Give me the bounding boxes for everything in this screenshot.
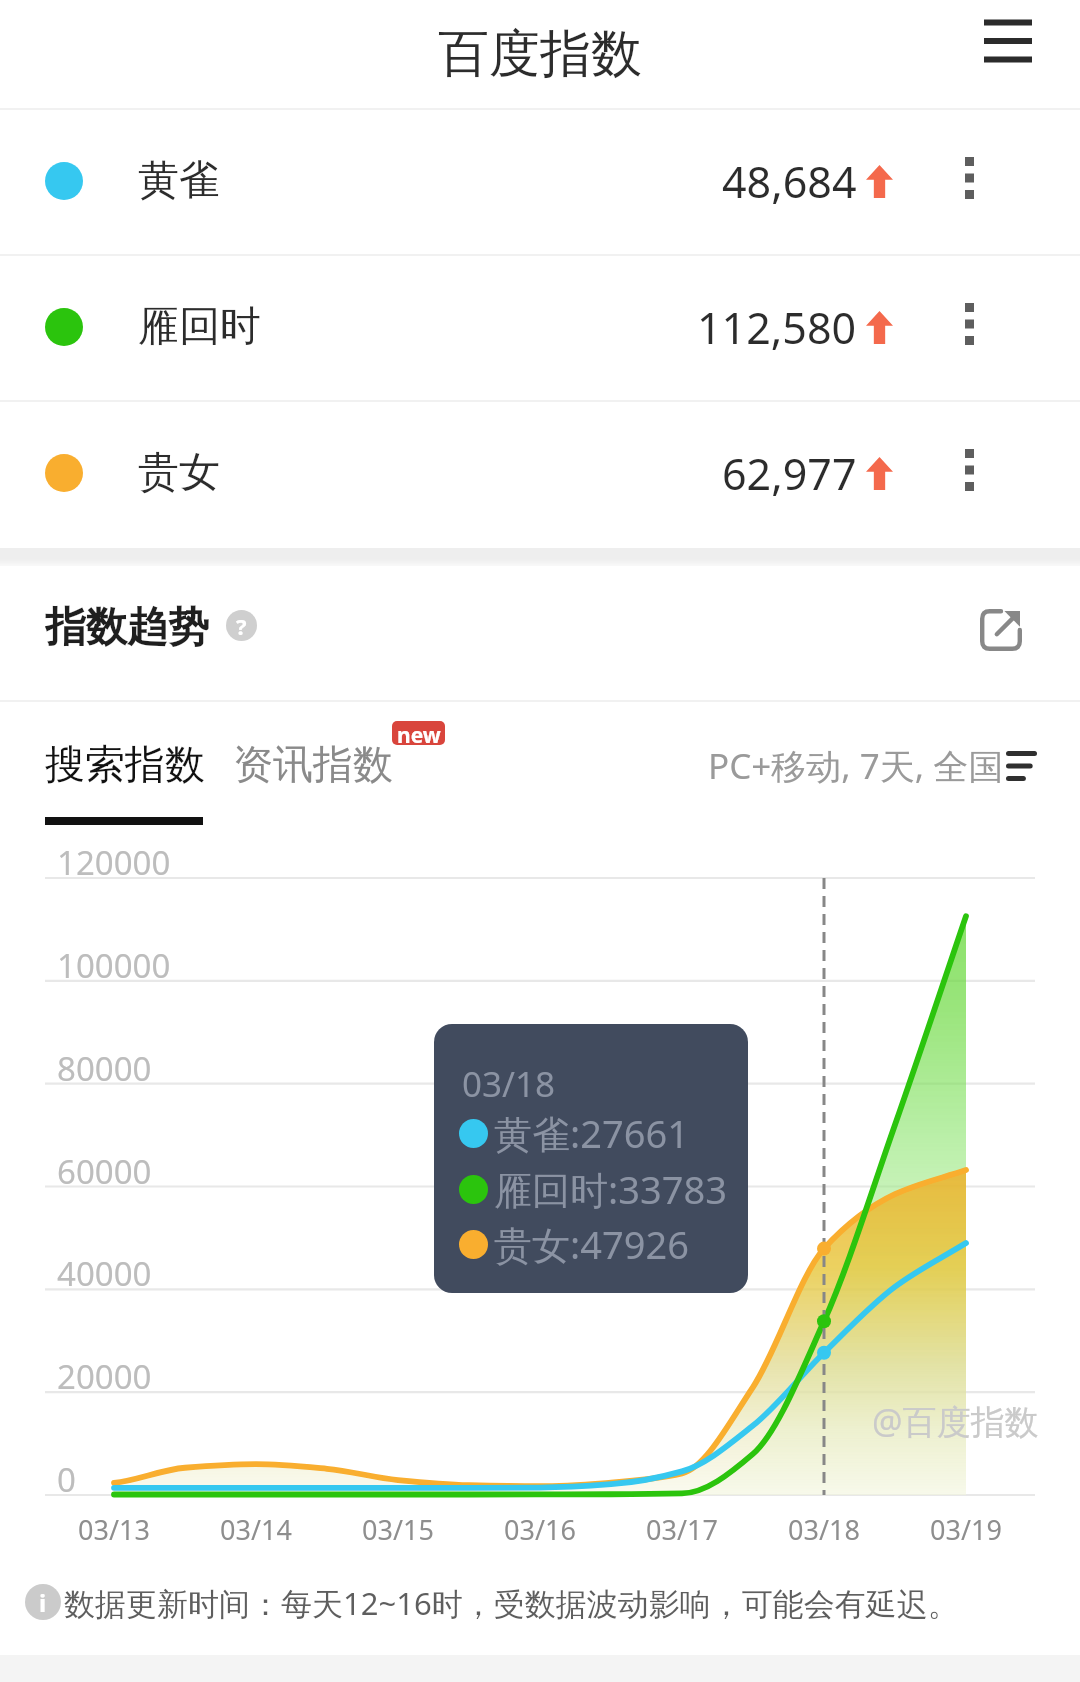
button[interactable]: 黄雀 [0,108,1080,254]
staticText: 百度指数 [438,22,642,86]
staticText: 80000 [57,1046,152,1091]
staticText: 资讯指数 [233,739,393,789]
button[interactable]: PC+移动, 7天, 全国 [708,742,1037,790]
staticText: 03/19 [896,1511,1036,1548]
staticText: 03/17 [612,1511,752,1548]
staticText: 贵女:47926 [494,1218,689,1270]
staticText: 03/15 [328,1511,468,1548]
staticText: 搜索指数 [45,739,205,789]
staticText: 40000 [57,1251,152,1296]
staticText: 指数趋势 [45,602,209,648]
staticText: 100000 [57,943,171,988]
staticText: @百度指数 [872,1398,1039,1444]
button[interactable]: 搜索指数 [45,739,205,789]
staticText: ? [236,611,247,641]
button[interactable]: 贵女 [0,400,1080,546]
staticText: 贵女 [138,447,220,499]
button[interactable]: More options [929,254,1009,400]
staticText: 0 [57,1457,76,1502]
staticText: 黄雀:27661 [494,1107,689,1159]
button[interactable]: Help [226,610,257,641]
staticText: 03/18 [754,1511,894,1548]
staticText: 黄雀 [138,155,220,207]
staticText: 03/18 [462,1060,556,1108]
staticText: 03/13 [44,1511,184,1548]
staticText: new [397,721,441,745]
staticText: 62,977 [722,444,857,503]
staticText: 03/16 [470,1511,610,1548]
staticText: i [39,1586,47,1619]
staticText: 03/14 [186,1511,326,1548]
staticText: 20000 [57,1354,152,1399]
staticText: 60000 [57,1149,152,1194]
staticText: 雁回时:33783 [494,1163,727,1215]
staticText: 雁回时 [138,301,261,353]
staticText: 112,580 [697,298,857,357]
staticText: 数据更新时间：每天12~16时，受数据波动影响，可能会有延迟。 [64,1582,959,1624]
staticText: 48,684 [722,152,857,211]
staticText: 120000 [57,840,171,885]
button[interactable]: 资讯指数 [233,739,393,789]
button[interactable]: Menu [960,0,1056,84]
button[interactable]: More options [929,108,1009,254]
staticText: PC+移动, 7天, 全国 [708,742,1004,790]
button[interactable]: More options [929,400,1009,546]
button[interactable]: Open in browser [968,597,1034,663]
button[interactable]: 雁回时 [0,254,1080,400]
